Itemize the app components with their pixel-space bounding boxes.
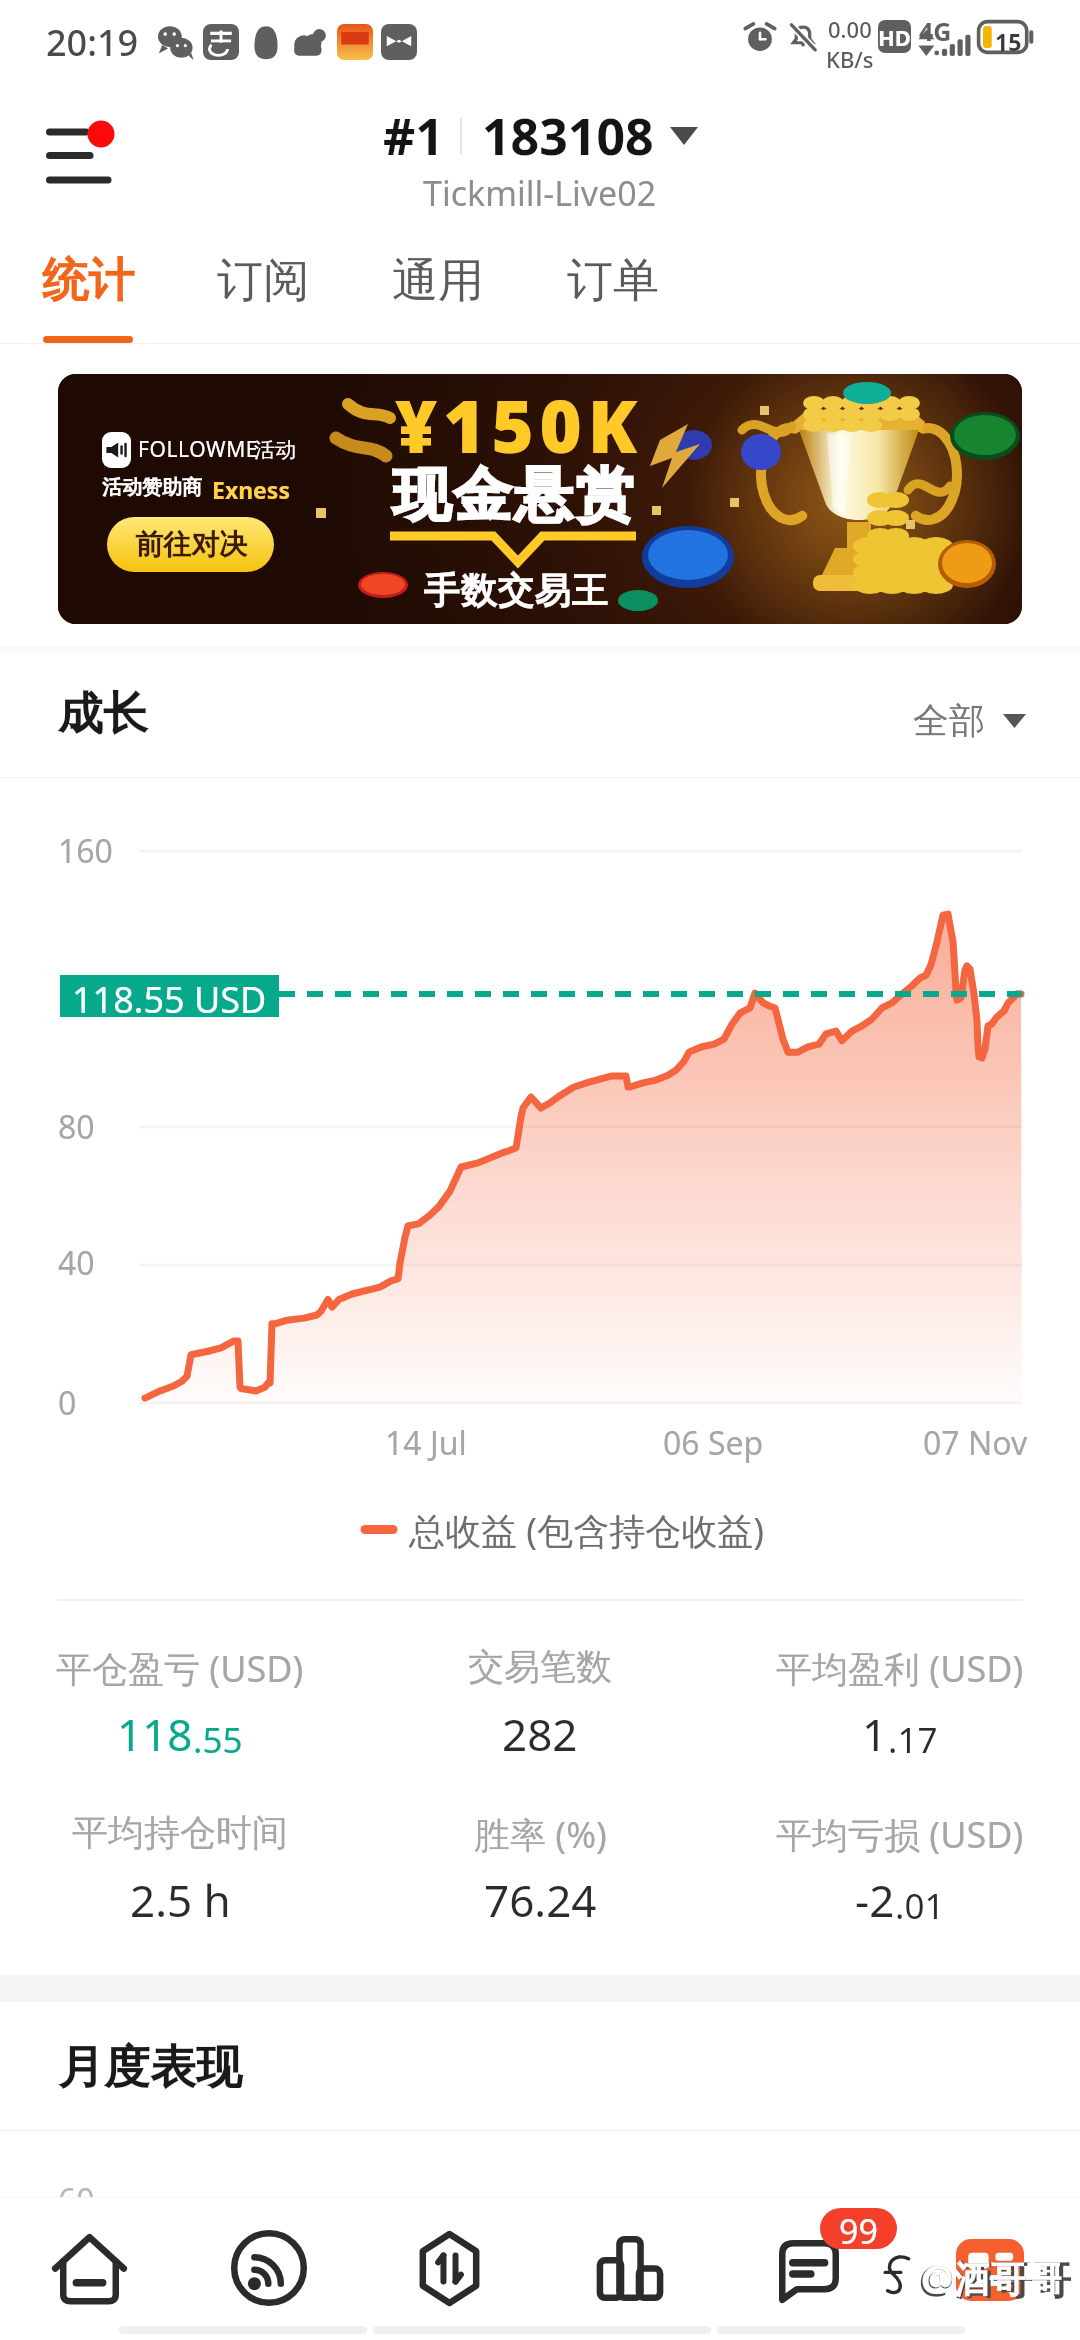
staticText: 通用 [392,252,484,310]
staticText: 平均持仓时间 [72,1810,288,1855]
staticText: 07 Nov [923,1421,1028,1465]
staticText: 交易笔数 [468,1644,612,1689]
staticText: 平仓盈亏 (USD) [56,1644,304,1693]
button[interactable]: 订单 [526,232,700,344]
button[interactable]: Home [44,2222,134,2314]
staticText: 平均盈利 (USD) [776,1644,1024,1693]
staticText: 118 [117,1704,193,1764]
staticText: 15 [995,26,1022,57]
staticText: 胜率 (%) [474,1810,607,1859]
staticText: 月度表现 [58,2039,242,2097]
staticText: 前往对决 [135,527,247,562]
staticText: HD [878,22,911,52]
staticText: 06 Sep [663,1421,764,1465]
staticText: 14 Jul [385,1421,467,1465]
staticText: 0.00 [828,14,872,44]
button[interactable]: Stats [585,2222,675,2314]
staticText: @酒哥哥 [919,2252,1072,2305]
staticText: .01 [895,1882,945,1930]
staticText: FOLLOWME [138,435,259,464]
staticText: .17 [888,1716,938,1764]
button[interactable]: 通用 [351,232,525,344]
button[interactable]: Menu [40,110,128,190]
staticText: 总收益 (包含持仓收益) [409,1506,764,1555]
button[interactable]: Messages [764,2222,854,2314]
staticText: 118.55 USD [72,975,267,1017]
staticText: Tickmill-Live02 [423,170,657,216]
staticText: 平均亏损 (USD) [776,1810,1024,1859]
staticText: #1 [383,102,444,170]
staticText: 订阅 [217,252,309,310]
staticText: 手数交易王 [423,568,608,613]
staticText: .55 [193,1716,243,1764]
staticText: 成长 [58,686,148,743]
staticText: 76.24 [484,1870,597,1930]
button[interactable]: #1 [0,80,1080,216]
staticText: 160 [58,829,113,873]
staticText: 282 [502,1704,578,1764]
staticText: Exness [212,474,290,505]
staticText: 0 [58,1381,77,1425]
staticText: 80 [58,1105,95,1149]
staticText: 99 [839,2208,878,2249]
staticText: 活动赞助商 [102,475,202,500]
button[interactable]: 前往对决 [107,517,274,572]
staticText: -2 [855,1870,895,1930]
staticText: 活动 [254,437,296,463]
staticText: 全部 [913,698,985,743]
button[interactable]: FOLLOWME [58,374,1022,624]
staticText: 4G [919,14,952,48]
staticText: 183108 [482,102,654,170]
staticText: 订单 [567,252,659,310]
staticText: 统计 [42,252,134,310]
staticText: 40 [58,1241,95,1285]
button[interactable]: 统计 [1,232,175,344]
staticText: 现金悬赏 [391,459,635,532]
button[interactable]: 全部 [913,698,1026,743]
button[interactable]: Trade [404,2222,494,2314]
button[interactable]: 订阅 [176,232,350,344]
staticText: ¥150K [395,376,644,474]
staticText: 2.5 h [130,1870,231,1930]
staticText: @酒哥哥 [921,2254,1062,2303]
button[interactable]: Signals [224,2222,314,2314]
staticText: 60 [58,2178,95,2198]
staticText: KB/s [826,44,874,74]
staticText: 20:19 [46,18,139,67]
staticText: 1 [862,1704,888,1764]
